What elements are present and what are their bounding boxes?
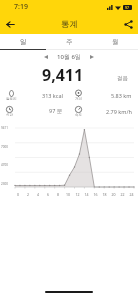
button[interactable]: 속도 (69, 103, 138, 119)
staticText: 칼로리 (6, 97, 17, 101)
button[interactable]: 칼로리 (0, 87, 69, 103)
staticText: 2 (23, 192, 33, 197)
staticText: 313 kcal (42, 92, 63, 99)
staticText: 7:19 (14, 2, 28, 12)
staticText: 16 (91, 192, 100, 197)
button[interactable]: Next day (86, 51, 98, 63)
staticText: 20 (109, 192, 118, 197)
staticText: 2.79 km/h (106, 108, 132, 115)
button[interactable]: 월 (92, 34, 138, 49)
button[interactable]: Share (118, 14, 138, 34)
staticText: 9411 (1, 126, 14, 130)
staticText: 2300 (1, 182, 14, 186)
button[interactable]: 거리 (69, 87, 138, 103)
staticText: 14 (82, 192, 91, 197)
staticText: 7000 (1, 145, 14, 149)
staticText: 97 분 (49, 107, 63, 115)
staticText: 12 (73, 192, 82, 197)
button[interactable]: 일 (0, 34, 46, 49)
staticText: 22 (118, 192, 127, 197)
staticText: 10월 6일 (57, 53, 81, 61)
staticText: 4700 (1, 163, 14, 167)
staticText: 시간 (6, 113, 13, 117)
staticText: 18 (100, 192, 109, 197)
staticText: 8 (53, 192, 63, 197)
staticText: 통계 (61, 19, 78, 30)
staticText: 10 (63, 192, 73, 197)
staticText: 월 (112, 38, 119, 46)
button[interactable]: Previous day (40, 51, 52, 63)
staticText: 0 (13, 192, 23, 197)
staticText: 거리 (75, 97, 82, 101)
staticText: 97 (125, 5, 130, 10)
staticText: 걸음 (117, 75, 128, 82)
staticText: 4 (33, 192, 43, 197)
button[interactable]: 주 (46, 34, 92, 49)
staticText: 6 (43, 192, 53, 197)
staticText: 9,411 (42, 64, 84, 84)
staticText: 주 (66, 38, 73, 46)
staticText: 24 (127, 192, 136, 197)
staticText: 속도 (75, 113, 82, 117)
staticText: 일 (20, 38, 27, 46)
staticText: 5.83 km (111, 92, 132, 99)
button[interactable]: Back (0, 14, 20, 34)
button[interactable]: 시간 (0, 103, 69, 119)
